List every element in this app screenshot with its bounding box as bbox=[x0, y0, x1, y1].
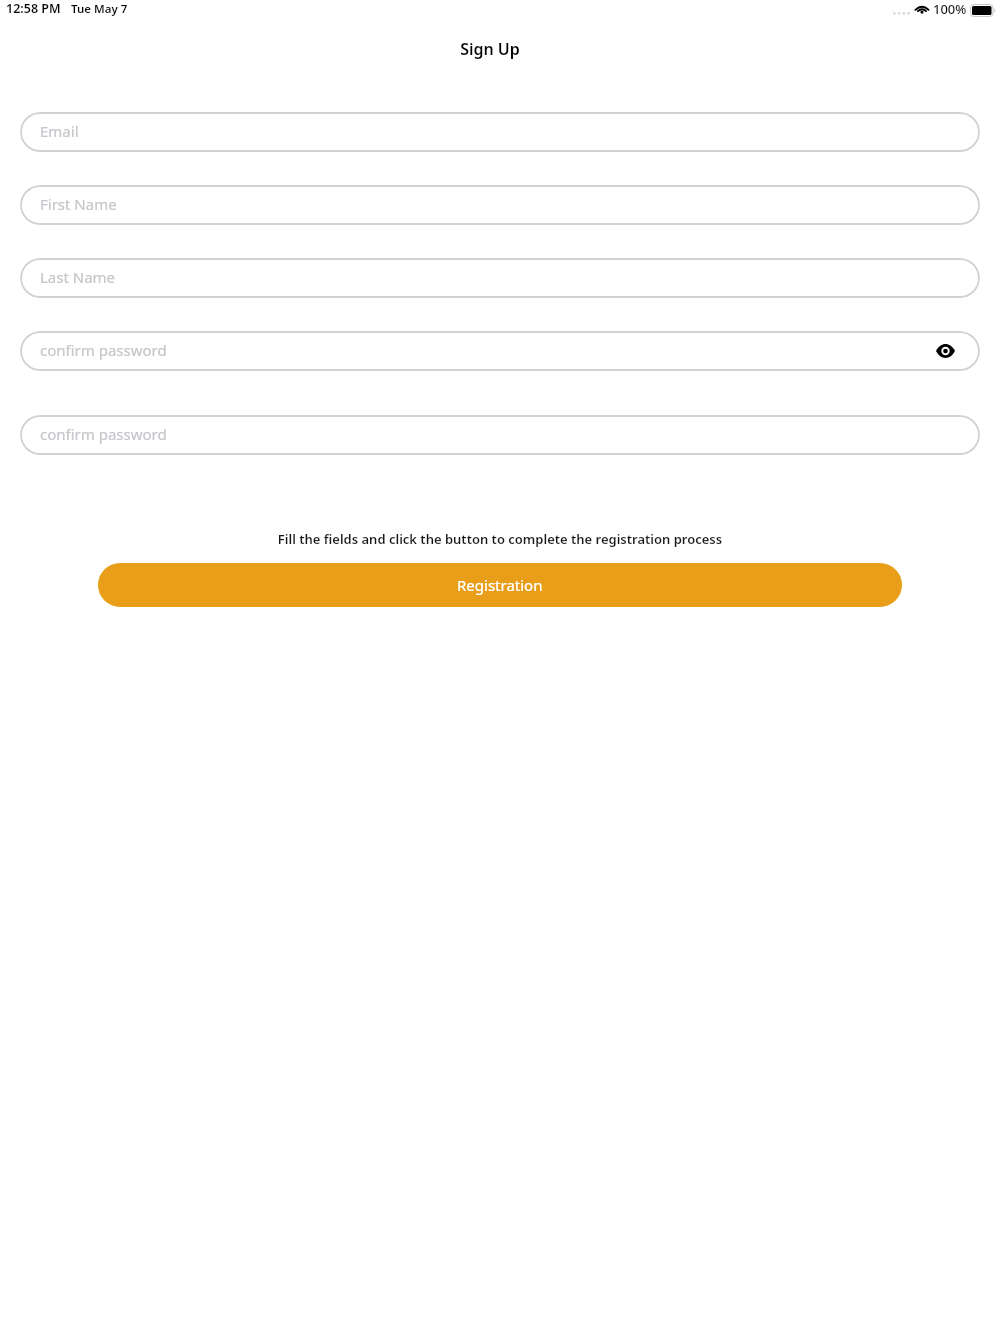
button[interactable]: Last Name bbox=[20, 258, 980, 298]
staticText: Fill the fields and click the button to … bbox=[0, 530, 1000, 548]
staticText: 12:58 PM bbox=[6, 0, 61, 17]
button[interactable]: confirm password bbox=[20, 415, 980, 455]
button[interactable]: Show password bbox=[932, 338, 958, 364]
button[interactable]: First Name bbox=[20, 185, 980, 225]
staticText: Last Name bbox=[40, 267, 116, 287]
button[interactable]: Email bbox=[20, 112, 980, 152]
staticText: confirm password bbox=[40, 424, 167, 444]
staticText: 100% bbox=[933, 0, 967, 18]
staticText: Registration bbox=[457, 575, 543, 595]
button[interactable]: confirm password bbox=[20, 331, 980, 371]
staticText: confirm password bbox=[40, 340, 167, 360]
staticText: Email bbox=[40, 121, 79, 141]
button[interactable]: Registration bbox=[98, 563, 902, 607]
staticText: Tue May 7 bbox=[71, 1, 128, 17]
staticText: Sign Up bbox=[0, 38, 990, 60]
staticText: First Name bbox=[40, 194, 117, 214]
